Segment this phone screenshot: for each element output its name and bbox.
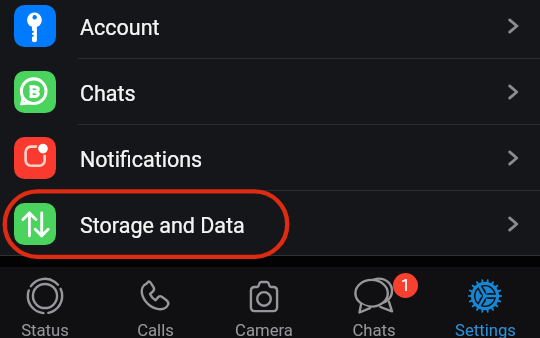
button[interactable]: Notifications — [0, 125, 540, 191]
staticText: Chats — [80, 81, 136, 106]
staticText: Settings — [455, 321, 516, 338]
button[interactable]: Camera — [212, 271, 316, 338]
staticText: Storage and Data — [80, 213, 245, 238]
staticText: 1 — [401, 276, 410, 295]
button[interactable]: 1 — [322, 271, 426, 338]
staticText: Camera — [235, 321, 293, 338]
staticText: Notifications — [80, 147, 203, 172]
staticText: Account — [80, 15, 160, 40]
button[interactable]: Settings — [433, 271, 537, 338]
button[interactable]: Storage and Data — [0, 191, 540, 257]
button[interactable]: Calls — [103, 271, 207, 338]
button[interactable]: Status — [0, 271, 97, 338]
staticText: Chats — [352, 321, 396, 338]
button[interactable]: Account — [0, 0, 540, 59]
staticText: Calls — [137, 321, 174, 338]
button[interactable]: Chats — [0, 59, 540, 125]
staticText: Status — [21, 321, 69, 338]
